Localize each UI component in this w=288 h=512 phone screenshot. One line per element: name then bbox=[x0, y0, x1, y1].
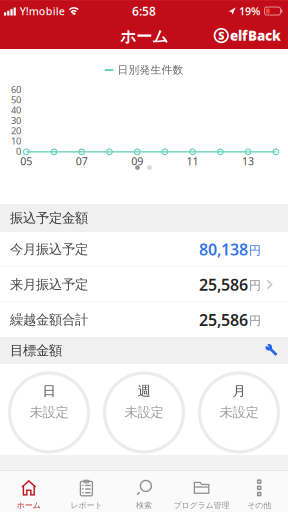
staticText: 検索 bbox=[136, 500, 152, 510]
staticText: 未設定 bbox=[29, 404, 68, 420]
staticText: 20 bbox=[11, 124, 21, 137]
staticText: 09 bbox=[131, 154, 143, 168]
staticText: 25,586 bbox=[199, 274, 248, 295]
staticText: elfBack bbox=[230, 27, 281, 44]
staticText: 今月振込予定 bbox=[10, 241, 88, 257]
staticText: 25,586 bbox=[199, 309, 248, 330]
staticText: 日別発生件数 bbox=[117, 63, 183, 77]
staticText: 05 bbox=[20, 154, 32, 168]
staticText: 月 bbox=[232, 383, 245, 399]
button[interactable]: 月 bbox=[199, 373, 278, 452]
button[interactable] bbox=[265, 343, 279, 357]
staticText: 6:58 bbox=[132, 3, 156, 19]
staticText: 未設定 bbox=[124, 404, 163, 420]
button[interactable]: S bbox=[214, 27, 281, 44]
button[interactable]: 繰越金額合計 bbox=[0, 302, 288, 337]
staticText: 来月振込予定 bbox=[10, 276, 88, 293]
button[interactable]: 来月振込予定 bbox=[0, 267, 288, 302]
staticText: 11 bbox=[187, 154, 199, 168]
button[interactable]: レポート bbox=[58, 471, 115, 512]
button[interactable]: その他 bbox=[230, 471, 288, 512]
staticText: 週 bbox=[137, 383, 150, 399]
button[interactable]: ホーム bbox=[0, 471, 58, 512]
staticText: 0 bbox=[16, 145, 21, 157]
staticText: Y!mobile bbox=[20, 4, 65, 18]
button[interactable]: 検索 bbox=[115, 471, 173, 512]
staticText: 13 bbox=[242, 154, 254, 168]
staticText: 10 bbox=[11, 135, 21, 147]
staticText: ホーム bbox=[120, 27, 168, 46]
staticText: 繰越金額合計 bbox=[10, 311, 88, 328]
staticText: 07 bbox=[76, 154, 88, 168]
staticText: 日 bbox=[42, 383, 55, 399]
staticText: 円 bbox=[249, 278, 261, 293]
button[interactable]: 日 bbox=[9, 373, 88, 452]
staticText: 未設定 bbox=[219, 404, 258, 420]
button[interactable]: 週 bbox=[104, 373, 183, 452]
staticText: 円 bbox=[249, 243, 261, 258]
staticText: 振込予定金額 bbox=[10, 210, 88, 226]
button[interactable]: プログラム管理 bbox=[173, 471, 230, 512]
staticText: 50 bbox=[11, 93, 21, 106]
staticText: S bbox=[218, 28, 224, 43]
staticText: レポート bbox=[70, 500, 102, 510]
staticText: プログラム管理 bbox=[174, 500, 230, 510]
staticText: 30 bbox=[11, 114, 21, 126]
staticText: 40 bbox=[11, 104, 21, 116]
staticText: 80,138 bbox=[199, 239, 248, 260]
staticText: ホーム bbox=[17, 500, 41, 510]
button[interactable]: 今月振込予定 bbox=[0, 232, 288, 267]
staticText: 目標金額 bbox=[10, 342, 62, 359]
staticText: 19% bbox=[239, 4, 260, 18]
staticText: 円 bbox=[249, 313, 261, 328]
staticText: その他 bbox=[247, 500, 271, 510]
staticText: 60 bbox=[11, 83, 21, 96]
